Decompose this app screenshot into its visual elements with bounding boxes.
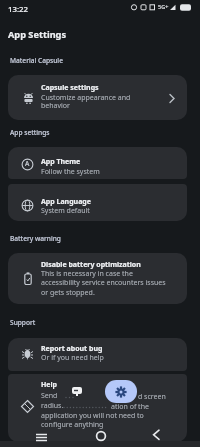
staticText: Or if you need help <box>41 353 104 363</box>
staticText: Battery warning <box>10 234 61 243</box>
button[interactable]: App Language <box>8 184 187 221</box>
staticText: d screen <box>138 392 166 402</box>
button[interactable] <box>93 428 109 444</box>
button[interactable]: Capsule settings <box>8 75 187 120</box>
staticText: 13:22 <box>8 4 28 15</box>
staticText: ation of the <box>111 402 149 412</box>
button[interactable]: Help <box>8 374 187 442</box>
staticText: App settings <box>10 128 50 137</box>
staticText: Support <box>10 318 36 327</box>
staticText: System default <box>41 206 90 216</box>
staticText: App Settings <box>8 28 67 41</box>
staticText: Send <box>41 391 58 401</box>
button[interactable] <box>148 426 164 442</box>
button[interactable]: Report about bug <box>8 338 187 371</box>
staticText: 5G+ <box>158 3 169 10</box>
staticText: Disable battery optimization <box>41 260 141 270</box>
staticText: Material Capsule <box>10 56 63 65</box>
staticText: App Language <box>41 197 91 207</box>
staticText: Customize appearance and <box>41 93 131 103</box>
staticText: Follow the system <box>41 167 100 177</box>
staticText: configure anything <box>41 420 104 430</box>
staticText: or gets stopped. <box>41 288 95 298</box>
staticText: A <box>25 159 30 168</box>
staticText: behavior <box>41 101 70 111</box>
button[interactable]: Disable battery optimization <box>8 253 187 304</box>
staticText: This is necessary in case the <box>41 269 133 279</box>
button[interactable]: A <box>8 147 187 179</box>
staticText: radius. <box>41 401 64 411</box>
staticText: application you will not need to <box>41 411 144 421</box>
button[interactable] <box>33 430 49 446</box>
staticText: Report about bug <box>41 344 103 354</box>
staticText: App Theme <box>41 157 81 167</box>
button[interactable] <box>105 380 137 403</box>
staticText: accessibility service encounters issues <box>41 278 166 288</box>
staticText: Capsule settings <box>41 83 99 93</box>
staticText: Help <box>41 380 58 390</box>
